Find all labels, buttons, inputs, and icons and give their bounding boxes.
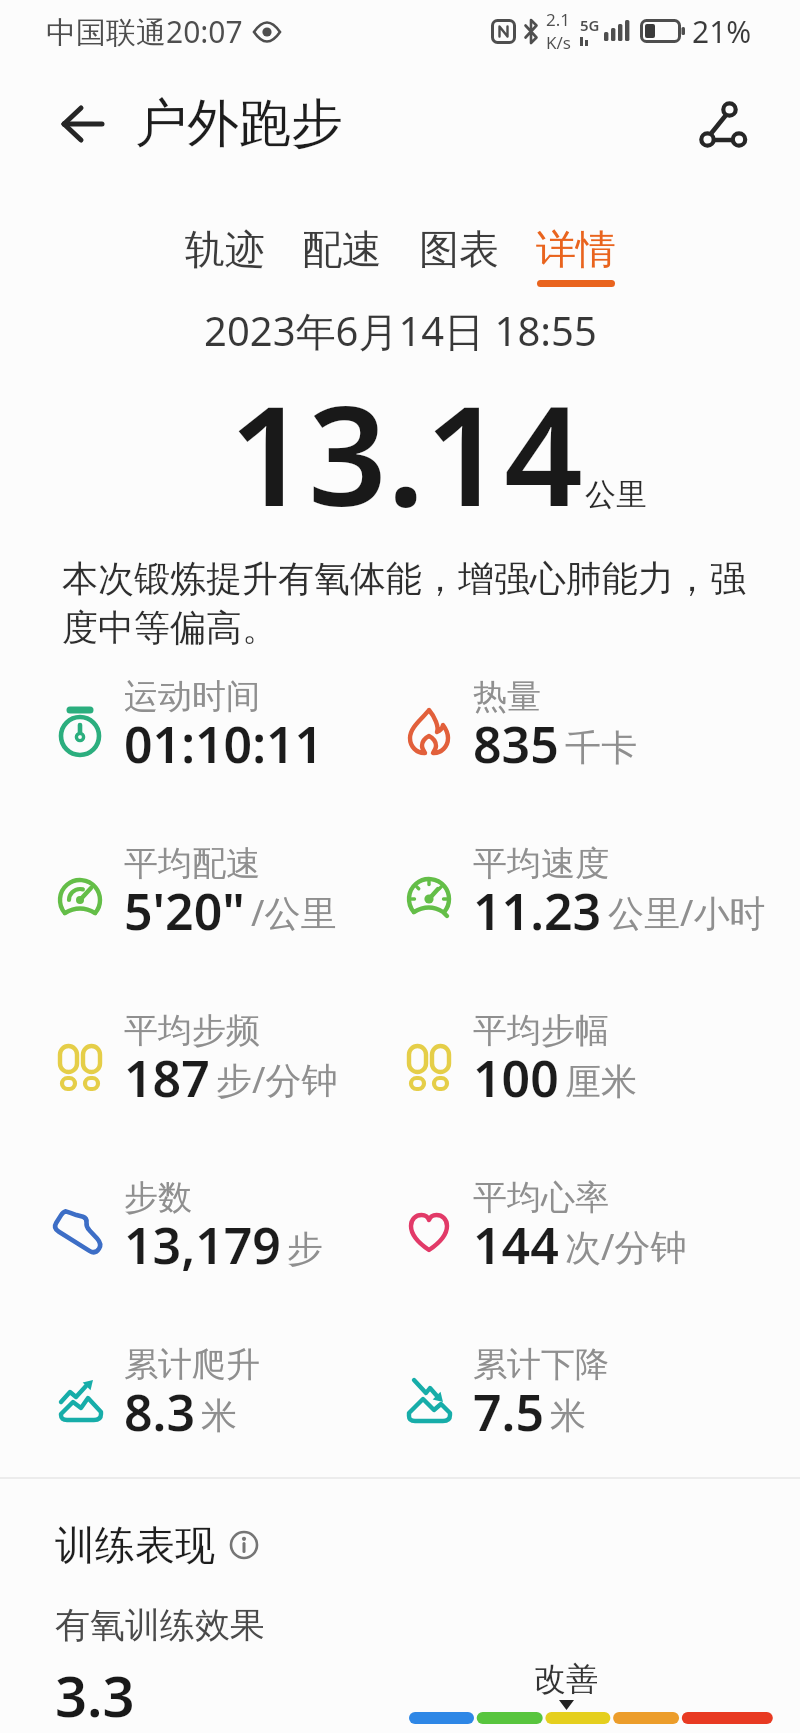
staticText: 13,179: [124, 1211, 281, 1279]
staticText: 度中等偏高。: [62, 605, 278, 650]
button[interactable]: [696, 98, 748, 150]
staticText: /公里: [251, 888, 337, 937]
staticText: 144: [473, 1211, 559, 1279]
staticText: 2023年6月14日 18:55: [204, 303, 597, 358]
staticText: 11.23: [473, 877, 602, 945]
staticText: 公里/小时: [608, 888, 766, 937]
staticText: 米: [201, 1393, 237, 1438]
button[interactable]: [229, 1530, 259, 1560]
staticText: 运动时间: [124, 675, 260, 718]
staticText: 次/分钟: [565, 1222, 687, 1271]
staticText: 步: [287, 1226, 323, 1271]
staticText: 100: [473, 1044, 559, 1112]
staticText: 详情: [536, 224, 616, 274]
staticText: 01:10:11: [124, 710, 324, 778]
staticText: 累计下降: [473, 1343, 609, 1386]
staticText: 本次锻炼提升有氧体能，增强心肺能力，强: [62, 556, 746, 601]
staticText: 2.1: [546, 8, 571, 31]
staticText: 改善: [534, 1659, 598, 1699]
staticText: 平均步频: [124, 1009, 260, 1052]
staticText: 公里: [585, 475, 647, 514]
staticText: K/s: [546, 31, 571, 54]
staticText: 187: [124, 1044, 210, 1112]
staticText: 轨迹: [185, 224, 265, 274]
button[interactable]: 运动时间: [54, 675, 324, 786]
staticText: 13.14: [229, 358, 583, 546]
button[interactable]: 轨迹: [185, 224, 265, 287]
staticText: 21%: [692, 11, 752, 52]
staticText: 5G: [580, 15, 600, 35]
staticText: 平均配速: [124, 842, 260, 885]
staticText: 米: [550, 1393, 586, 1438]
staticText: 步数: [124, 1176, 192, 1219]
button[interactable]: 平均步频: [54, 1009, 338, 1120]
button[interactable]: 平均速度: [403, 842, 766, 953]
staticText: 7.5: [473, 1378, 544, 1446]
staticText: 平均心率: [473, 1176, 609, 1219]
button[interactable]: 配速: [302, 224, 382, 287]
staticText: 配速: [302, 224, 382, 274]
staticText: 8.3: [124, 1378, 195, 1446]
staticText: 厘米: [565, 1059, 637, 1104]
staticText: 3.3: [55, 1657, 135, 1733]
button[interactable]: 累计下降: [403, 1343, 609, 1454]
staticText: 有氧训练效果: [55, 1603, 265, 1647]
staticText: 累计爬升: [124, 1343, 260, 1386]
button[interactable]: 平均配速: [54, 842, 337, 953]
staticText: 平均步幅: [473, 1009, 609, 1052]
staticText: 5'20": [124, 877, 245, 945]
staticText: 图表: [419, 224, 499, 274]
staticText: 训练表现: [55, 1520, 215, 1570]
staticText: 平均速度: [473, 842, 609, 885]
button[interactable]: 平均心率: [403, 1176, 687, 1287]
button[interactable]: 平均步幅: [403, 1009, 637, 1120]
button[interactable]: 图表: [419, 224, 499, 287]
staticText: 步/分钟: [216, 1055, 338, 1104]
button[interactable]: 累计爬升: [54, 1343, 260, 1454]
button[interactable]: 热量: [403, 675, 637, 786]
button[interactable]: 详情: [536, 224, 616, 287]
staticText: 中国联通20:07: [46, 11, 243, 52]
button[interactable]: [55, 98, 107, 150]
staticText: 户外跑步: [135, 91, 343, 157]
staticText: 835: [473, 710, 559, 778]
staticText: 千卡: [565, 725, 637, 770]
staticText: 热量: [473, 675, 541, 718]
button[interactable]: 步数: [54, 1176, 323, 1287]
